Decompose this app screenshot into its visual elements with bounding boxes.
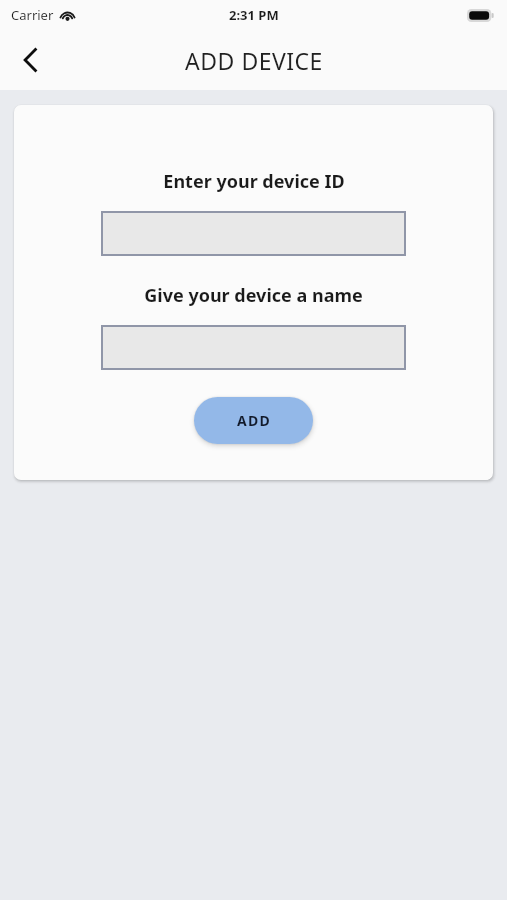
- staticText: Carrier: [11, 6, 54, 24]
- button[interactable]: [101, 211, 406, 256]
- staticText: 2:31 PM: [229, 6, 279, 24]
- staticText: Give your device a name: [144, 283, 363, 308]
- staticText: ADD: [237, 411, 271, 430]
- staticText: ADD DEVICE: [185, 45, 323, 76]
- button[interactable]: [101, 325, 406, 370]
- button[interactable]: Back: [8, 37, 54, 83]
- staticText: Enter your device ID: [163, 169, 345, 194]
- button[interactable]: ADD: [194, 397, 313, 444]
